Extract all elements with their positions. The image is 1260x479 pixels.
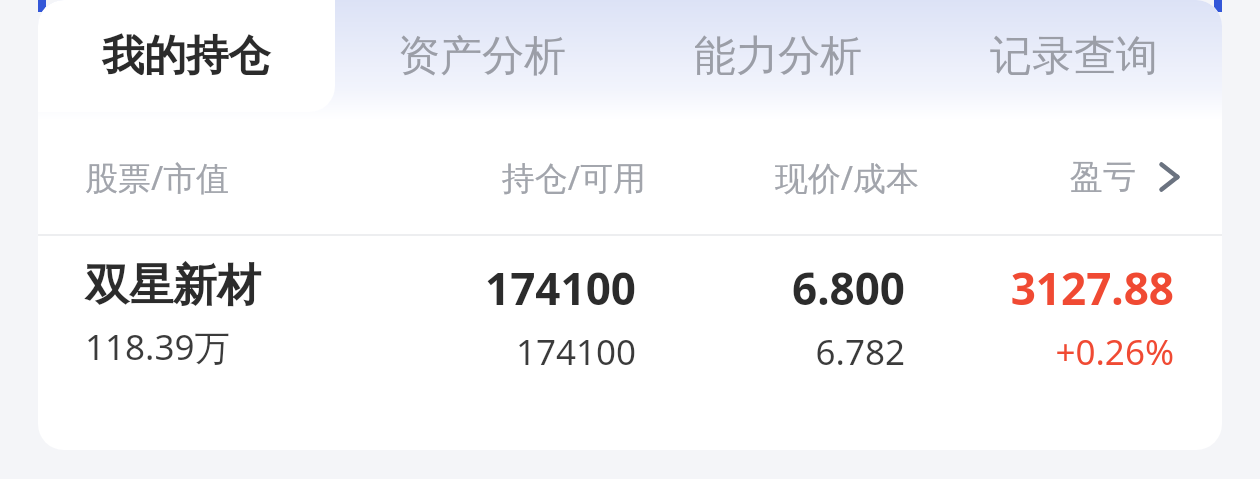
button[interactable]: 我的持仓 bbox=[38, 0, 334, 112]
button[interactable]: 展开盈亏 bbox=[1146, 154, 1192, 200]
staticText: 我的持仓 bbox=[102, 30, 270, 83]
staticText: 现价/成本 bbox=[646, 155, 919, 200]
staticText: 能力分析 bbox=[694, 30, 862, 83]
staticText: 股票/市值 bbox=[85, 155, 373, 200]
staticText: 记录查询 bbox=[990, 30, 1158, 83]
button[interactable]: 记录查询 bbox=[926, 0, 1222, 112]
staticText: 6.782 bbox=[636, 328, 905, 376]
staticText: 174100 bbox=[367, 328, 636, 376]
staticText: 6.800 bbox=[636, 258, 905, 318]
button[interactable]: 资产分析 bbox=[334, 0, 630, 112]
staticText: 资产分析 bbox=[398, 30, 566, 83]
button[interactable]: 能力分析 bbox=[630, 0, 926, 112]
staticText: 持仓/可用 bbox=[373, 155, 646, 200]
staticText: 3127.88 bbox=[905, 258, 1174, 318]
staticText: 双星新材 bbox=[85, 258, 367, 313]
staticText: +0.26% bbox=[905, 328, 1174, 376]
button[interactable]: 双星新材 bbox=[38, 258, 1222, 418]
button[interactable]: 股票/市值 bbox=[38, 138, 1222, 216]
staticText: 盈亏 bbox=[1070, 156, 1136, 198]
staticText: 118.39万 bbox=[85, 323, 367, 371]
staticText: 174100 bbox=[367, 258, 636, 318]
